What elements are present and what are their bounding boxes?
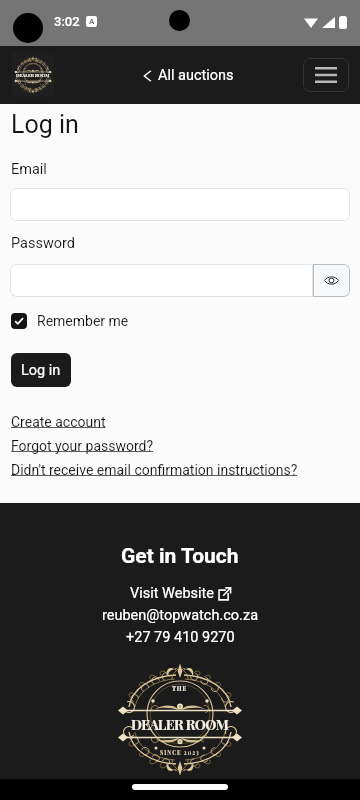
staticText: Visit Website [130, 585, 215, 602]
staticText: Log in [21, 362, 61, 379]
staticText: Remember me [37, 313, 129, 329]
button[interactable]: All auctions [143, 67, 234, 84]
staticText: reuben@topwatch.co.za [102, 607, 259, 624]
staticText: DEALER ROOM [16, 72, 50, 78]
staticText: Get in Touch [121, 544, 239, 569]
staticText: 3:02 [54, 14, 80, 29]
staticText: +27 79 410 9270 [126, 629, 235, 646]
button[interactable] [10, 188, 350, 221]
staticText: DEALER ROOM [131, 715, 229, 734]
staticText: Create account [11, 414, 106, 430]
button[interactable]: Visit Website [130, 585, 231, 602]
staticText: Password [11, 235, 76, 252]
staticText: Forgot your password? [11, 438, 154, 454]
staticText: Didn't receive email confirmation instru… [11, 462, 298, 478]
button[interactable]: Log in [11, 353, 71, 387]
button[interactable]: Remember me [11, 313, 129, 329]
button[interactable]: Menu [303, 58, 349, 92]
button[interactable]: Show password [313, 264, 350, 297]
staticText: A [89, 17, 95, 26]
staticText: Log in [11, 110, 79, 139]
button[interactable]: Create account [11, 414, 106, 430]
staticText: Email [11, 161, 47, 178]
staticText: THE [172, 685, 188, 693]
button[interactable]: Didn't receive email confirmation instru… [11, 462, 298, 478]
button[interactable] [10, 264, 313, 297]
button[interactable]: Forgot your password? [11, 438, 154, 454]
staticText: All auctions [158, 67, 234, 84]
staticText: SINCE 2023 [160, 749, 200, 756]
